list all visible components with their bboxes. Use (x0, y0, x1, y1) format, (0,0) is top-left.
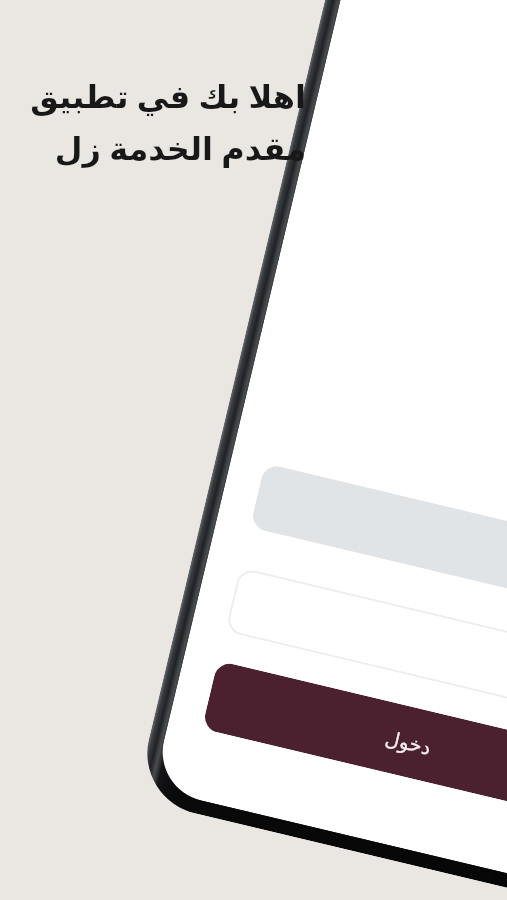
staticText: دخول (383, 726, 434, 759)
staticText: مقدم الخدمة زل (14, 126, 306, 170)
staticText: رقم الهاتف (267, 439, 507, 549)
staticText: كلمة المرور (242, 543, 507, 653)
staticText: اهلا بك في تطبيق (14, 74, 306, 118)
button[interactable] (225, 567, 507, 726)
button[interactable] (250, 463, 507, 622)
button[interactable]: دخول (202, 660, 507, 823)
